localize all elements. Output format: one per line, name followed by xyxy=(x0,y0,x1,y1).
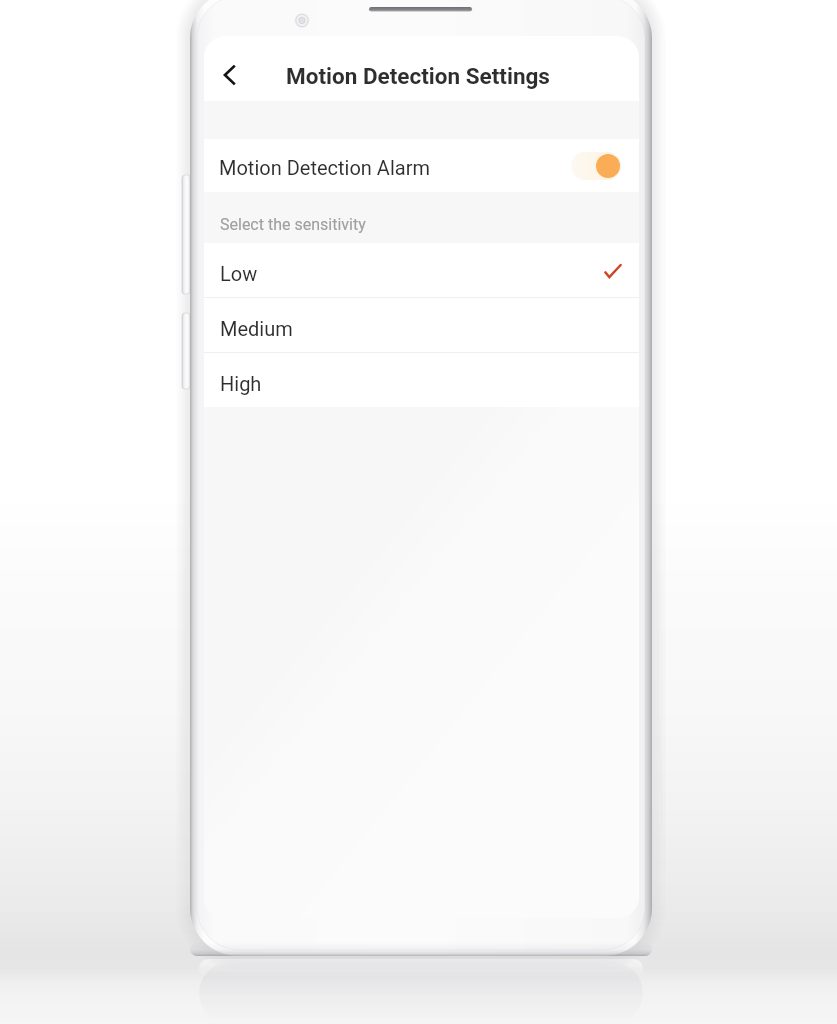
button[interactable]: Medium xyxy=(204,298,639,352)
staticText: Low xyxy=(220,262,258,285)
staticText: Medium xyxy=(220,317,293,340)
staticText: High xyxy=(220,372,262,395)
button[interactable]: Back xyxy=(208,53,252,97)
button[interactable]: Low xyxy=(204,243,639,297)
staticText: Motion Detection Alarm xyxy=(219,156,430,179)
button[interactable]: High xyxy=(204,353,639,407)
staticText: Select the sensitivity xyxy=(220,215,366,234)
staticText: Motion Detection Settings xyxy=(286,63,550,89)
button[interactable]: Motion Detection Alarm toggle xyxy=(571,152,621,180)
button[interactable]: Motion Detection Alarm xyxy=(204,139,639,192)
